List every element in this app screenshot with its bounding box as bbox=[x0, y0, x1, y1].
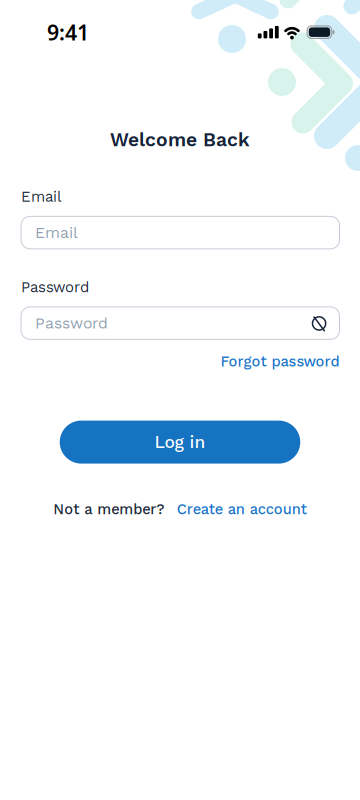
button[interactable]: Password bbox=[21, 307, 339, 339]
staticText: Not a member? bbox=[53, 501, 164, 518]
staticText: Welcome Back bbox=[110, 128, 250, 151]
staticText: Password bbox=[35, 314, 108, 332]
staticText: Email bbox=[21, 188, 62, 205]
button[interactable]: Forgot password bbox=[220, 353, 339, 370]
staticText: 9:41 bbox=[47, 18, 89, 46]
button[interactable]: Create an account bbox=[164, 501, 307, 518]
staticText: Forgot password bbox=[220, 353, 339, 370]
staticText: Email bbox=[35, 223, 78, 242]
staticText: Create an account bbox=[177, 501, 307, 518]
button[interactable]: Email bbox=[21, 216, 339, 249]
staticText: Log in bbox=[154, 432, 205, 452]
staticText: Password bbox=[21, 278, 89, 296]
button[interactable] bbox=[310, 315, 339, 332]
button[interactable]: Log in bbox=[60, 421, 300, 464]
